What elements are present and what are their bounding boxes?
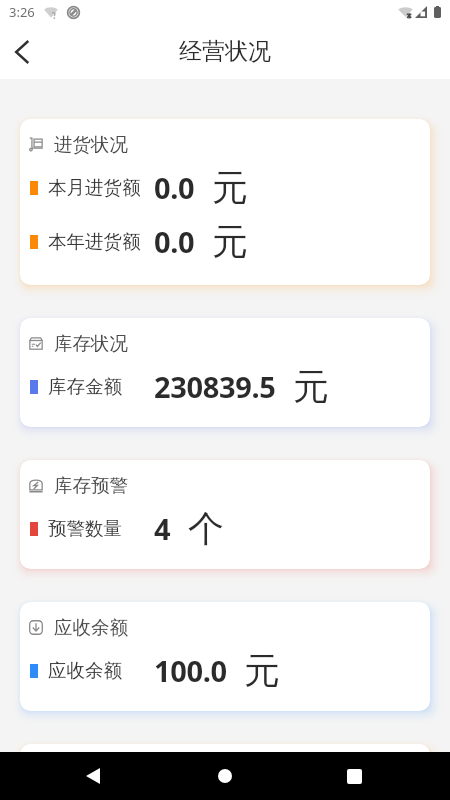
button[interactable]: 进货状况 [20,119,430,285]
staticText: 元 [293,364,329,409]
button[interactable]: 应收余额 [20,602,430,711]
staticText: 4 [154,509,171,548]
staticText: 230839.5 [154,367,276,406]
button[interactable]: Back [0,30,44,74]
button[interactable]: Back [86,768,100,784]
staticText: 元 [212,219,248,264]
staticText: 个 [188,506,224,551]
staticText: 3:26 [9,3,35,21]
staticText: 0.0 [154,168,195,207]
button[interactable]: Recents [347,769,362,784]
staticText: 应收余额 [54,616,128,639]
button[interactable]: 库存状况 [20,318,430,427]
staticText: 进货状况 [54,133,128,156]
staticText: 元 [212,165,248,210]
staticText: 预警数量 [48,517,122,540]
staticText: 库存金额 [48,375,122,398]
staticText: 经营状况 [179,37,271,66]
staticText: 本年进货额 [48,230,141,253]
staticText: 元 [244,648,280,693]
staticText: 库存预警 [54,474,128,497]
staticText: 0.0 [154,222,195,261]
button[interactable]: Home [218,769,232,783]
staticText: 应收余额 [48,659,122,682]
staticText: 库存状况 [54,332,128,355]
staticText: 本月进货额 [48,176,141,199]
staticText: 100.0 [154,651,227,690]
button[interactable]: 库存预警 [20,460,430,569]
